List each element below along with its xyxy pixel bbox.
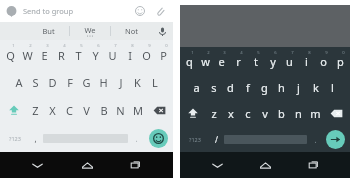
button[interactable]: Backspace xyxy=(324,100,349,126)
button[interactable]: Backspace xyxy=(146,96,172,124)
button[interactable]: N xyxy=(112,96,129,124)
button[interactable]: c xyxy=(239,100,256,126)
button[interactable]: 8 xyxy=(298,47,315,74)
button[interactable]: Recents xyxy=(302,153,326,177)
button[interactable]: C xyxy=(61,96,78,124)
staticText: p xyxy=(337,54,344,69)
button[interactable]: d xyxy=(222,74,239,100)
button[interactable]: Back xyxy=(205,153,229,177)
button[interactable]: 9 xyxy=(315,47,332,74)
button[interactable]: j xyxy=(290,74,307,100)
button[interactable]: x xyxy=(222,100,239,126)
button[interactable]: 3 xyxy=(213,47,230,74)
button[interactable]: k xyxy=(307,74,324,100)
button[interactable]: / xyxy=(208,126,224,152)
button[interactable]: We xyxy=(70,22,110,40)
button[interactable]: Emoji xyxy=(133,4,147,18)
button[interactable]: 0 xyxy=(155,40,172,68)
staticText: We xyxy=(84,25,96,35)
button[interactable]: Back xyxy=(25,153,49,177)
staticText: z xyxy=(211,106,217,121)
button[interactable]: 7 xyxy=(104,40,121,68)
button[interactable]: Send xyxy=(326,130,345,149)
button[interactable]: F xyxy=(61,68,78,96)
button[interactable]: 3 xyxy=(36,40,53,68)
button[interactable]: K xyxy=(129,68,146,96)
button[interactable]: a xyxy=(188,74,205,100)
staticText: V xyxy=(83,103,90,118)
staticText: Not xyxy=(125,26,138,36)
button[interactable]: But xyxy=(28,22,69,40)
button[interactable]: Voice input xyxy=(151,22,173,40)
button[interactable]: 2 xyxy=(19,40,36,68)
button[interactable]: Home xyxy=(75,153,99,177)
staticText: Y xyxy=(92,48,99,63)
button[interactable]: B xyxy=(95,96,112,124)
staticText: q xyxy=(186,54,193,69)
button[interactable]: ?123 xyxy=(182,126,208,152)
button[interactable]: H xyxy=(95,68,112,96)
button[interactable]: Emoji xyxy=(149,129,168,148)
button[interactable]: Attach xyxy=(153,4,167,18)
button[interactable]: l xyxy=(324,74,341,100)
staticText: / xyxy=(215,134,218,145)
button[interactable]: 8 xyxy=(121,40,138,68)
button[interactable]: 7 xyxy=(281,47,298,74)
staticText: I xyxy=(128,48,132,63)
button[interactable]: 1 xyxy=(1,40,19,68)
button[interactable]: b xyxy=(273,100,290,126)
button[interactable]: ?123 xyxy=(2,124,27,152)
button[interactable]: s xyxy=(205,74,222,100)
button[interactable]: 4 xyxy=(230,47,247,74)
button[interactable]: 6 xyxy=(264,47,281,74)
staticText: 3 xyxy=(223,50,226,56)
button[interactable]: h xyxy=(273,74,290,100)
button[interactable]: g xyxy=(256,74,273,100)
button[interactable]: S xyxy=(27,68,44,96)
button[interactable]: 5 xyxy=(247,47,264,74)
staticText: H xyxy=(99,75,108,90)
button[interactable]: Not xyxy=(111,22,151,40)
button[interactable]: L xyxy=(146,68,163,96)
button[interactable]: A xyxy=(10,68,27,96)
staticText: 3 xyxy=(46,43,49,49)
button[interactable]: Z xyxy=(27,96,44,124)
button[interactable]: G xyxy=(78,68,95,96)
button[interactable]: 9 xyxy=(138,40,155,68)
button[interactable]: Shift xyxy=(1,96,27,124)
button[interactable]: m xyxy=(307,100,324,126)
button[interactable]: 0 xyxy=(332,47,349,74)
button[interactable]: 2 xyxy=(197,47,213,74)
button[interactable]: 6 xyxy=(87,40,104,68)
button[interactable]: . xyxy=(307,126,323,152)
staticText: 4 xyxy=(63,43,66,49)
button[interactable]: 4 xyxy=(53,40,70,68)
staticText: M xyxy=(133,103,143,118)
button[interactable]: f xyxy=(239,74,256,100)
button[interactable]: , xyxy=(27,124,43,152)
staticText: G xyxy=(82,75,91,90)
button[interactable]: V xyxy=(78,96,95,124)
staticText: 8 xyxy=(308,50,311,56)
staticText: Send to group xyxy=(23,6,133,16)
button[interactable]: Home xyxy=(253,153,277,177)
button[interactable]: M xyxy=(129,96,146,124)
button[interactable]: 5 xyxy=(70,40,87,68)
button[interactable]: Shift xyxy=(181,100,205,126)
button[interactable]: 1 xyxy=(181,47,197,74)
staticText: O xyxy=(142,48,151,63)
button[interactable]: Recents xyxy=(124,153,148,177)
button[interactable]: X xyxy=(44,96,61,124)
staticText: k xyxy=(313,80,319,95)
button[interactable]: n xyxy=(290,100,307,126)
button[interactable]: D xyxy=(44,68,61,96)
staticText: 0 xyxy=(165,43,168,49)
button[interactable]: J xyxy=(112,68,129,96)
button[interactable]: z xyxy=(205,100,222,126)
button[interactable]: v xyxy=(256,100,273,126)
staticText: ?123 xyxy=(9,135,21,142)
staticText: S xyxy=(32,75,39,90)
